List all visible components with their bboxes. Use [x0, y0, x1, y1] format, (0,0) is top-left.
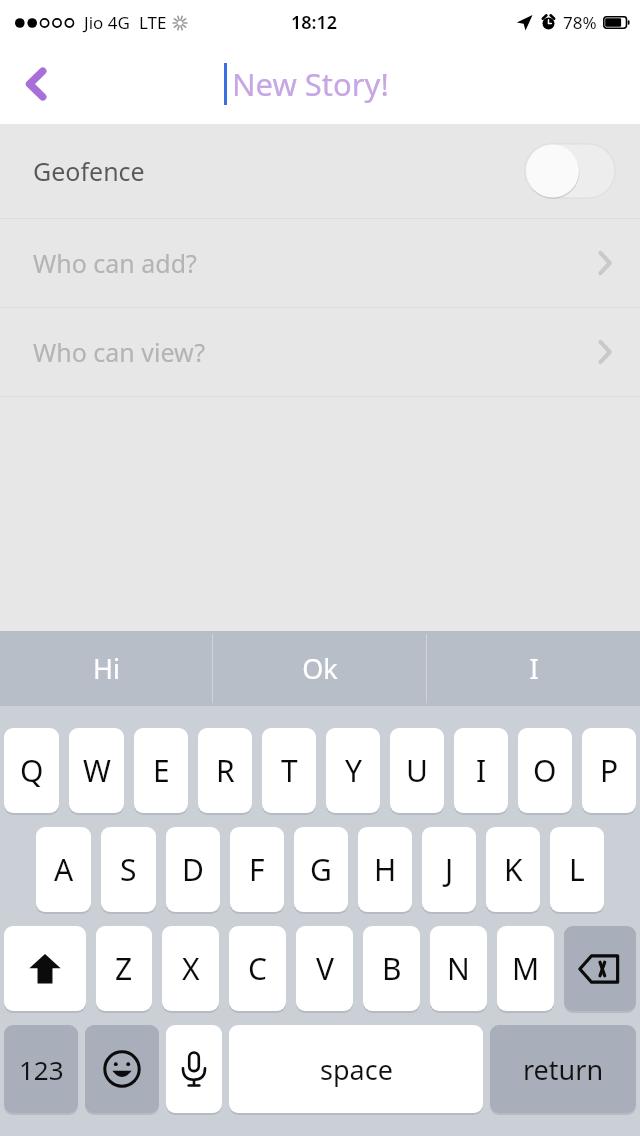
button[interactable]: X	[162, 926, 219, 1011]
button[interactable]: V	[296, 926, 353, 1011]
staticText: O	[533, 750, 557, 791]
button[interactable]: U	[390, 728, 444, 813]
staticText: N	[447, 948, 470, 989]
button[interactable]: Back	[0, 48, 72, 120]
staticText: W	[83, 750, 111, 791]
button[interactable]: B	[363, 926, 420, 1011]
staticText: B	[382, 948, 402, 989]
button[interactable]: F	[230, 827, 284, 912]
button[interactable]: R	[198, 728, 252, 813]
button[interactable]: Numbers	[4, 1025, 78, 1113]
staticText: Who can view?	[33, 335, 206, 369]
staticText: H	[374, 849, 397, 890]
staticText: 18:12	[291, 10, 338, 35]
button[interactable]: Shift	[4, 926, 86, 1011]
button[interactable]: space	[229, 1025, 483, 1113]
button[interactable]: Dictate	[166, 1025, 222, 1113]
button[interactable]: W	[69, 728, 124, 813]
staticText: Who can add?	[33, 246, 197, 280]
button[interactable]: K	[486, 827, 540, 912]
button[interactable]: I	[454, 728, 508, 813]
staticText: Ok	[302, 650, 338, 687]
button[interactable]: return	[490, 1025, 636, 1113]
button[interactable]: Backspace	[564, 926, 636, 1011]
staticText: I	[529, 650, 539, 687]
button[interactable]: C	[229, 926, 286, 1011]
button[interactable]: I	[427, 631, 640, 706]
staticText: E	[153, 750, 170, 791]
staticText: L	[569, 849, 585, 890]
button[interactable]: S	[101, 827, 156, 912]
staticText: New Story!	[232, 63, 389, 105]
staticText: LTE	[139, 11, 167, 34]
button[interactable]: J	[422, 827, 476, 912]
staticText: K	[504, 849, 523, 890]
staticText: return	[523, 1051, 604, 1088]
staticText: X	[182, 948, 200, 989]
button[interactable]: O	[518, 728, 572, 813]
staticText: Jio 4G	[84, 11, 130, 34]
staticText: F	[249, 849, 265, 890]
staticText: M	[512, 948, 540, 989]
staticText: S	[120, 849, 137, 890]
button[interactable]: Z	[96, 926, 152, 1011]
button[interactable]: Geofence	[0, 124, 640, 218]
staticText: V	[316, 948, 334, 989]
button[interactable]: Y	[326, 728, 380, 813]
button[interactable]: Ok	[213, 631, 426, 706]
button[interactable]: D	[166, 827, 220, 912]
staticText: Y	[345, 750, 362, 791]
staticText: A	[54, 849, 74, 890]
button[interactable]: P	[582, 728, 636, 813]
staticText: G	[310, 849, 332, 890]
staticText: R	[216, 750, 235, 791]
staticText: U	[406, 750, 428, 791]
staticText: J	[445, 849, 454, 890]
button[interactable]: T	[262, 728, 316, 813]
button[interactable]: M	[497, 926, 554, 1011]
button[interactable]: H	[358, 827, 412, 912]
staticText: Hi	[93, 650, 120, 687]
button[interactable]: G	[294, 827, 348, 912]
staticText: Z	[115, 948, 133, 989]
staticText: C	[248, 948, 267, 989]
button[interactable]: E	[134, 728, 188, 813]
staticText: 123	[19, 1052, 64, 1087]
button[interactable]: N	[430, 926, 487, 1011]
staticText: T	[281, 750, 298, 791]
button[interactable]: A	[36, 827, 91, 912]
button[interactable]: Hi	[0, 631, 212, 706]
button[interactable]: Who can add?	[0, 219, 640, 307]
staticText: Q	[20, 750, 44, 791]
staticText: D	[182, 849, 204, 890]
button[interactable]: Geofence toggle	[524, 143, 616, 199]
button[interactable]: L	[550, 827, 604, 912]
staticText: Geofence	[33, 154, 145, 188]
staticText: space	[320, 1051, 393, 1088]
staticText: 78%	[563, 11, 597, 34]
staticText: P	[600, 750, 619, 791]
button[interactable]: Who can view?	[0, 308, 640, 396]
button[interactable]: Emoji	[85, 1025, 159, 1113]
staticText: I	[476, 750, 487, 791]
button[interactable]: Q	[4, 728, 59, 813]
